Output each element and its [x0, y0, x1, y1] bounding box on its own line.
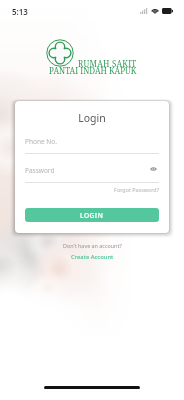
staticText: 5:13: [12, 6, 28, 17]
staticText: LOGIN: [80, 211, 104, 220]
staticText: Don't have an account?: [63, 242, 122, 249]
button[interactable]: Forgot Password?: [75, 186, 159, 193]
staticText: Password: [25, 166, 55, 175]
button[interactable]: LOGIN: [25, 208, 159, 222]
staticText: PANTAI INDAH KAPUK: [49, 65, 137, 76]
staticText: Phone No.: [25, 137, 57, 146]
staticText: Login: [15, 111, 169, 125]
button[interactable]: Show password: [147, 163, 159, 175]
staticText: Forgot Password?: [114, 186, 159, 193]
button[interactable]: Create Account: [67, 252, 118, 262]
staticText: RUMAH SAKIT: [78, 58, 137, 69]
